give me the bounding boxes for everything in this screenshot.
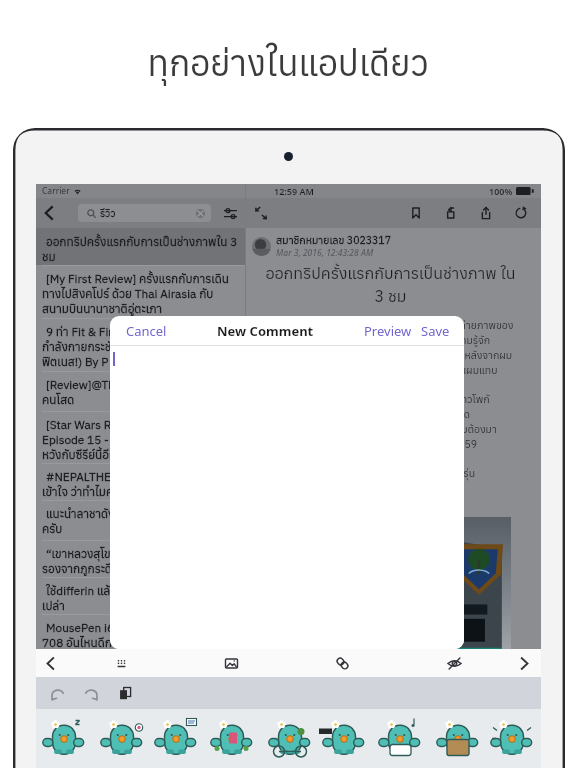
staticText: 100% <box>489 185 513 197</box>
staticText: 9 ท่า Fit & Firm ลดพุงสร้างซิกแพค <box>46 324 216 339</box>
button[interactable]: [My First Review] ครั้งแรกกับการเดิน <box>36 265 245 318</box>
staticText: ฟิตเนส!) By P <box>42 354 109 369</box>
button[interactable]: MousePen i608 กับ Wacom CTL- <box>36 614 245 650</box>
staticText: ขึ้นไปบนยอดเขาสูงชันมาก ผมเลยถ่ายภาพไปทั… <box>254 407 471 421</box>
staticText: Cancel <box>126 322 167 340</box>
button[interactable]: Previous field <box>36 649 64 677</box>
staticText: [Review]@The Mall บางกะปิ ร้านอาหาร <box>46 377 239 392</box>
staticText: Preview <box>364 322 412 340</box>
button[interactable]: Keypad <box>107 649 135 677</box>
button[interactable]: Reply <box>433 198 468 228</box>
button[interactable]: Sticker 7 <box>373 709 429 768</box>
staticText: สนามบินนานาชาติอู่ตะเภา <box>42 301 163 316</box>
staticText: หลายร้อยรูปเลยทีเดียว แบตหมดเกลี้ยงเลย ท… <box>254 422 497 436</box>
staticText: ทุกอย่างในแอปเดียว <box>0 40 576 86</box>
button[interactable]: Bookmark <box>398 198 433 228</box>
staticText: ทางไปสิงคโปร์ ด้วย Thai Airasia กับ <box>42 286 214 301</box>
button[interactable]: Cancel <box>124 319 169 343</box>
button[interactable]: Next field <box>510 649 538 677</box>
staticText: Carrier <box>42 185 70 197</box>
button[interactable]: ออกทริปครั้งแรกกับการเป็นช่างภาพใน 3 <box>36 228 245 265</box>
button[interactable]: Hide keyboard <box>440 649 468 677</box>
button[interactable]: Sticker 3 <box>149 709 205 768</box>
button[interactable]: 9 ท่า Fit & Firm ลดพุงสร้างซิกแพค <box>36 318 245 371</box>
staticText: ชาร์จใหม่อีกครั้งหนึ่งนะ ก่อนที่จะออกเดิ… <box>254 437 478 451</box>
staticText: รีวิว <box>100 207 116 220</box>
staticText: ครับ <box>42 521 63 536</box>
button[interactable]: Sticker 5 <box>261 709 317 768</box>
button[interactable]: Preview <box>362 319 414 343</box>
staticText: สมาชิกหมายเลข 3023317 <box>276 233 391 247</box>
button[interactable]: Sticker 9 <box>485 709 541 768</box>
button[interactable]: Refresh <box>503 198 538 228</box>
button[interactable]: ใช้differin แล้วสิวขึ้นเยอะมาก ปกติ <box>36 577 245 614</box>
staticText: รองจากภูกระดึง <box>42 561 119 576</box>
staticText: ออกทริปครั้งแรกกับการเป็นช่างภาพ ใน 3 ชม <box>243 263 538 307</box>
staticText: ออกทริปครั้งแรกกับการเป็นช่างภาพใน 3 <box>46 234 238 249</box>
button[interactable]: #NEPALTHEROOFOFTHEWORLD ผม <box>36 463 245 500</box>
button[interactable]: Sticker 4 <box>205 709 261 768</box>
button[interactable]: Redo <box>78 680 104 706</box>
staticText: Save <box>421 322 450 340</box>
button[interactable]: Filter <box>215 198 245 228</box>
button[interactable]: Sticker 8 <box>429 709 485 768</box>
button[interactable]: Sticker 1 <box>36 709 93 768</box>
staticText: 12:59 AM <box>274 185 314 197</box>
button[interactable]: Copy <box>112 680 138 706</box>
button[interactable]: [Star Wars Review] The Clone Wars <box>36 411 245 463</box>
staticText: กับเพื่อนใหม่ ที่ชอบถ่ายรูปเหมือนกันครับ… <box>254 348 513 362</box>
staticText: MousePen i608 กับ Wacom CTL- <box>46 620 215 635</box>
staticText: 708 อันไหนดีกว่ากันครับ <box>42 635 159 650</box>
button[interactable]: Insert photo <box>217 649 245 677</box>
button[interactable]: Undo <box>44 680 70 706</box>
button[interactable]: Expand <box>246 198 276 228</box>
staticText: ธรรมชาติกันครับ วันนี้ผมได้มีโอกาสได้ออก… <box>254 333 491 347</box>
staticText: ตอนนั้นผมอยู่ที่ภูกระดึง จ.เลย เดินขึ้นเ… <box>254 392 490 406</box>
button[interactable]: Back <box>36 198 62 228</box>
button[interactable]: รีวิว <box>78 204 211 222</box>
staticText: เปล่า <box>42 598 65 613</box>
staticText: ชม <box>42 249 56 264</box>
button[interactable]: Share <box>468 198 503 228</box>
button[interactable]: Save <box>419 319 452 343</box>
button[interactable]: Sticker 6 <box>317 709 373 768</box>
button[interactable]: Insert link <box>328 649 356 677</box>
button[interactable]: [Review]@The Mall บางกะปิ ร้านอาหาร <box>36 371 245 411</box>
button[interactable]: Sticker 2 <box>93 709 149 768</box>
staticText: ใช้differin แล้วสิวขึ้นเยอะมาก ปกติ <box>46 583 209 598</box>
staticText: “เขาหลวงสุโขทัย” ยอดเขาที่สูงเป็น <box>46 546 208 561</box>
staticText: Episode 15 - Trespass ตอนที่ผม <box>42 432 205 447</box>
staticText: สวัสดีครับ ผมเป็นมือใหม่หัดถ่ายภาพ ที่ชอ… <box>254 318 514 332</box>
staticText: [My First Review] ครั้งแรกกับการเดิน <box>46 271 229 286</box>
button[interactable]: แนะนำลาชาดังๆในกรุงเทพหน่อย <box>36 500 245 540</box>
staticText: New Comment <box>217 322 314 340</box>
staticText: หวังกับซีรีย์นี้อีกครั้ง <box>42 447 136 462</box>
staticText: Mar 3, 2016, 12:43:28 AM <box>276 247 374 259</box>
staticText: และนี่ก็คือภาพบางส่วนของการได้ออกทริปเอา… <box>254 466 476 480</box>
staticText: แนะนำลาชาดังๆในกรุงเทพหน่อย <box>46 506 199 521</box>
staticText: ได้ลองเล่นกล้องตัวใหม่มาสักพักใหญ่ๆ แล้ว… <box>254 363 498 377</box>
staticText: กำลังกายกระชับสัดส่วน (ไม่ต้องเข้า <box>42 339 207 354</box>
button[interactable]: “เขาหลวงสุโขทัย” ยอดเขาที่สูงเป็น <box>36 540 245 577</box>
staticText: เข้าใจ ว่าทำไมคนถึงหลงรักเนปาล <box>42 484 198 499</box>
staticText: [Star Wars Review] The Clone Wars <box>46 417 231 432</box>
staticText: #NEPALTHEROOFOFTHEWORLD ผม <box>46 469 236 484</box>
staticText: คนโสด <box>42 392 75 407</box>
